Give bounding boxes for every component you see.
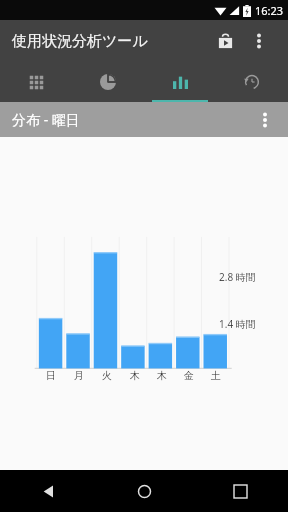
staticText: 火 [102, 369, 112, 382]
staticText: 金 [184, 369, 194, 382]
button[interactable]: Play Store [208, 24, 242, 58]
button[interactable]: Bar chart [144, 62, 216, 102]
button[interactable]: History [216, 62, 288, 102]
button[interactable]: Chart options [250, 105, 280, 135]
staticText: 16:23 [255, 3, 284, 18]
button[interactable]: Home [96, 470, 192, 512]
staticText: 木 [130, 369, 140, 382]
staticText: 2.8 時間 [219, 270, 256, 284]
button[interactable]: Recents [192, 470, 288, 512]
staticText: 土 [211, 369, 221, 382]
staticText: 1.4 時間 [219, 317, 256, 331]
staticText: 分布 - 曜日 [12, 110, 80, 129]
button[interactable]: More options [242, 24, 276, 58]
button[interactable]: Back [0, 470, 96, 512]
button[interactable]: Pie chart [72, 62, 144, 102]
staticText: 使用状況分析ツール [12, 32, 148, 51]
button[interactable]: Apps list [0, 62, 72, 102]
staticText: 月 [74, 369, 84, 382]
staticText: 日 [46, 369, 56, 382]
staticText: 木 [157, 369, 167, 382]
